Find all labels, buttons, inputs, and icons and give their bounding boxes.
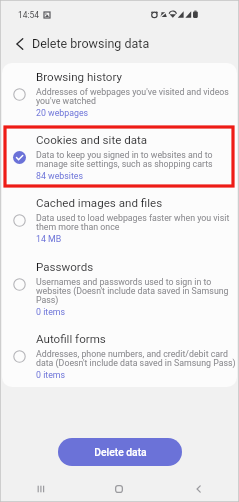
staticText: 0 items	[36, 370, 66, 380]
button[interactable]: Passwords	[2, 253, 237, 325]
button[interactable]: Recent apps	[0, 475, 79, 502]
button[interactable]: Home	[79, 475, 159, 502]
button[interactable]: Delete data	[58, 438, 182, 466]
staticText: Cookies and site data	[36, 133, 148, 147]
staticText: Autofill forms	[36, 332, 106, 346]
staticText: 14:54	[18, 10, 39, 20]
staticText: 84 websites	[36, 171, 84, 181]
button[interactable]: Back	[159, 475, 239, 502]
staticText: Delete browsing data	[32, 36, 150, 51]
staticText: Addresses of webpages you've visited and…	[36, 87, 237, 106]
staticText: Cached images and files	[36, 196, 163, 210]
staticText: Data used to load webpages faster when y…	[36, 213, 237, 232]
button[interactable]: Browsing history	[2, 63, 237, 126]
staticText: 20 webpages	[36, 108, 89, 118]
button[interactable]: Navigate up	[8, 32, 31, 55]
button[interactable]: Autofill forms	[2, 325, 237, 387]
staticText: Passwords	[36, 260, 94, 274]
button[interactable]: Cookies and site data	[2, 126, 237, 189]
staticText: Browsing history	[36, 70, 122, 84]
staticText: Data to keep you signed in to websites a…	[36, 150, 237, 169]
staticText: 14 MB	[36, 234, 62, 244]
staticText: 0 items	[36, 307, 66, 317]
button[interactable]: Cached images and files	[2, 189, 237, 253]
staticText: Usernames and passwords used to sign in …	[36, 277, 237, 305]
staticText: Addresses, phone numbers, and credit/deb…	[36, 349, 237, 368]
staticText: Delete data	[94, 446, 147, 458]
